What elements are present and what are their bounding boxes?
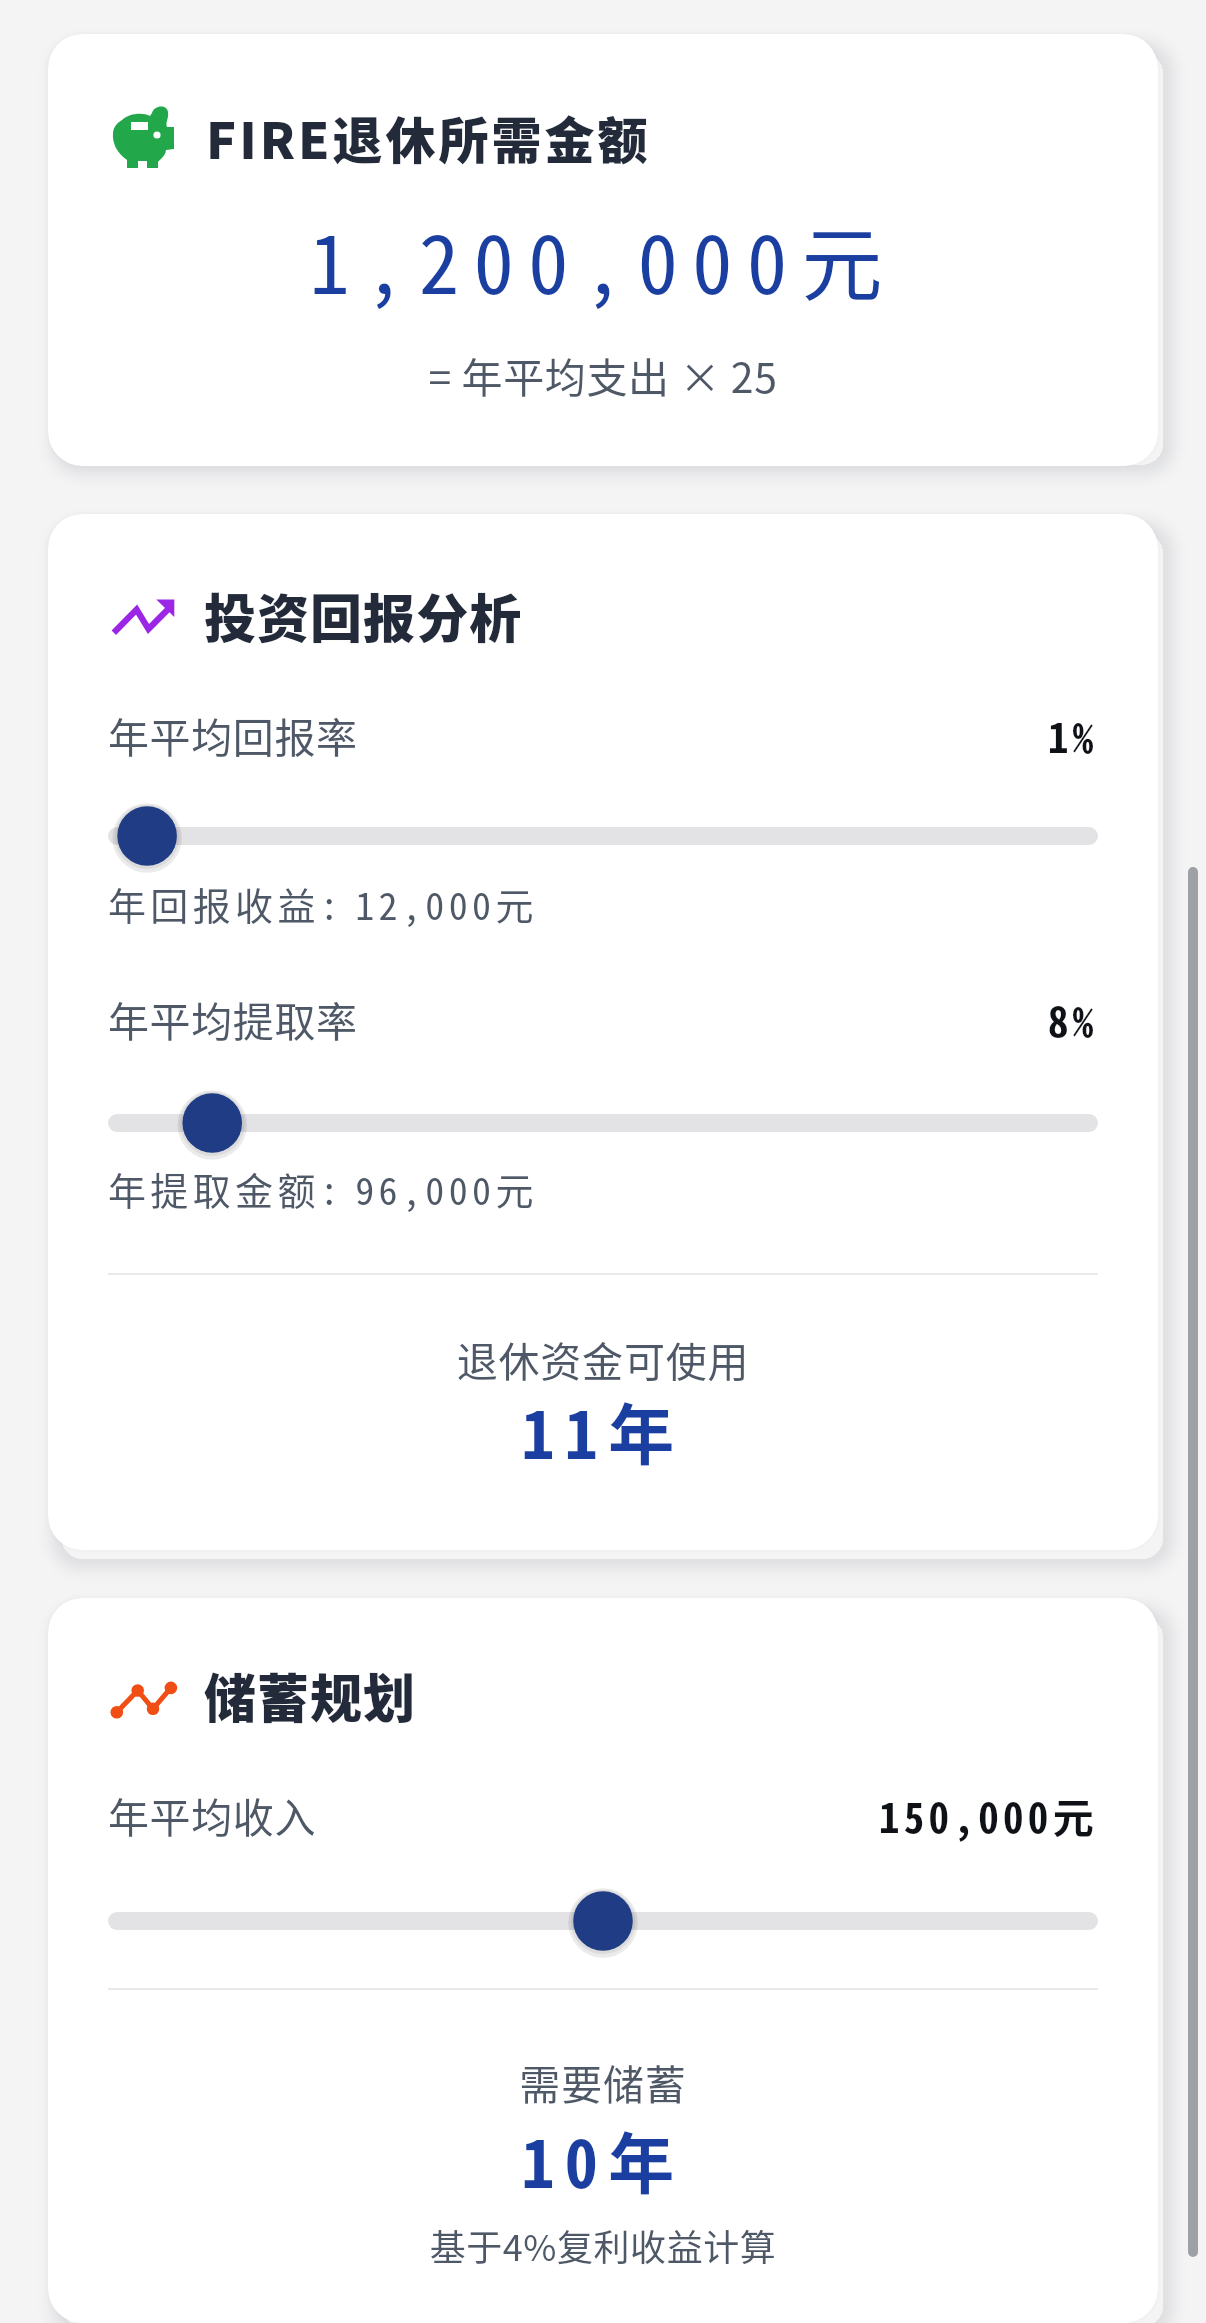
staticText: 11年 [108, 1382, 1098, 1478]
button[interactable]: Slider [108, 1091, 1098, 1149]
staticText: 1,200,000元 [48, 200, 1158, 317]
staticText: 1% [1048, 705, 1098, 764]
staticText: 10年 [108, 2111, 1098, 2207]
staticText: FIRE退休所需金额 [206, 101, 651, 173]
staticText: 150,000元 [879, 1785, 1098, 1844]
staticText: 年平均回报率 [108, 705, 358, 764]
other: Piggy bank [110, 104, 176, 170]
staticText: 8% [1048, 989, 1098, 1048]
staticText: 储蓄规划 [204, 1658, 417, 1733]
button[interactable]: Slider [108, 1889, 1098, 1947]
button[interactable]: Slider [108, 804, 1098, 862]
staticText: 年平均提取率 [108, 989, 358, 1048]
staticText: 年平均收入 [108, 1785, 317, 1844]
staticText: 年提取金额: 96,000元 [108, 1161, 538, 1216]
staticText: 需要储蓄 [108, 2052, 1098, 2111]
staticText: 年回报收益: 12,000元 [108, 876, 538, 931]
staticText: = 年平均支出 × 25 [48, 345, 1158, 404]
staticText: 基于4%复利收益计算 [108, 2219, 1098, 2271]
staticText: 退休资金可使用 [108, 1329, 1098, 1388]
staticText: 投资回报分析 [204, 578, 523, 653]
